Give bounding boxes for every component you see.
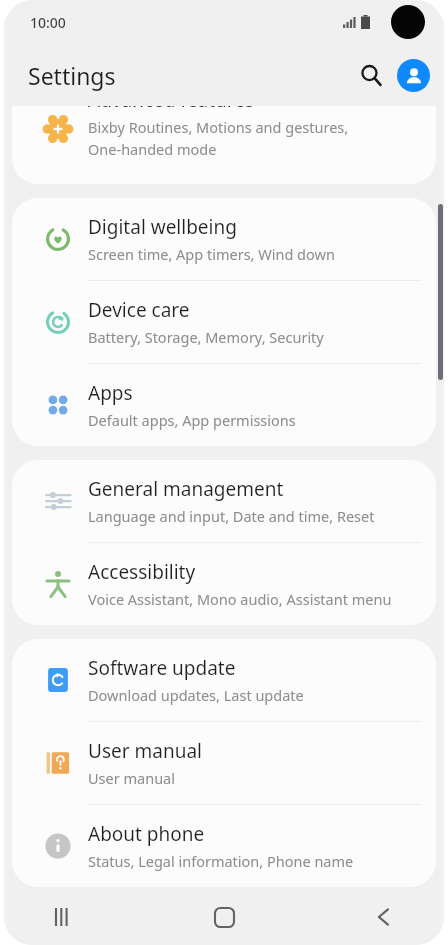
staticText: Screen time, App timers, Wind down [88, 244, 335, 264]
staticText: Accessibility [88, 559, 196, 585]
staticText: Bixby Routines, Motions and gestures, [88, 117, 349, 137]
staticText: Digital wellbeing [88, 214, 237, 240]
button[interactable]: Software update [12, 639, 436, 721]
button[interactable]: Recent apps [34, 889, 94, 945]
button[interactable]: General management [12, 460, 436, 542]
staticText: Default apps, App permissions [88, 410, 296, 430]
staticText: One-handed mode [88, 139, 217, 159]
staticText: Battery, Storage, Memory, Security [88, 327, 324, 347]
staticText: Language and input, Date and time, Reset [88, 506, 375, 526]
staticText: Advanced features [88, 106, 255, 113]
button[interactable]: Accessibility [12, 543, 436, 625]
staticText: 10:00 [30, 13, 66, 32]
button[interactable]: Advanced features [12, 106, 436, 184]
staticText: Apps [88, 380, 133, 406]
staticText: Download updates, Last update [88, 685, 304, 705]
button[interactable]: Apps [12, 364, 436, 446]
staticText: Software update [88, 655, 236, 681]
staticText: User manual [88, 738, 202, 764]
staticText: Voice Assistant, Mono audio, Assistant m… [88, 589, 392, 609]
staticText: User manual [88, 768, 175, 788]
button[interactable]: About phone [12, 805, 436, 887]
button[interactable]: User manual [12, 722, 436, 804]
button[interactable]: Digital wellbeing [12, 198, 436, 280]
button[interactable]: Account [397, 59, 430, 92]
staticText: General management [88, 476, 284, 502]
staticText: Settings [28, 60, 116, 91]
button[interactable]: Search [350, 54, 392, 96]
button[interactable]: Back [354, 889, 414, 945]
button[interactable]: Device care [12, 281, 436, 363]
staticText: About phone [88, 821, 205, 847]
staticText: Device care [88, 297, 190, 323]
staticText: Status, Legal information, Phone name [88, 851, 354, 871]
button[interactable]: Home [194, 889, 254, 945]
